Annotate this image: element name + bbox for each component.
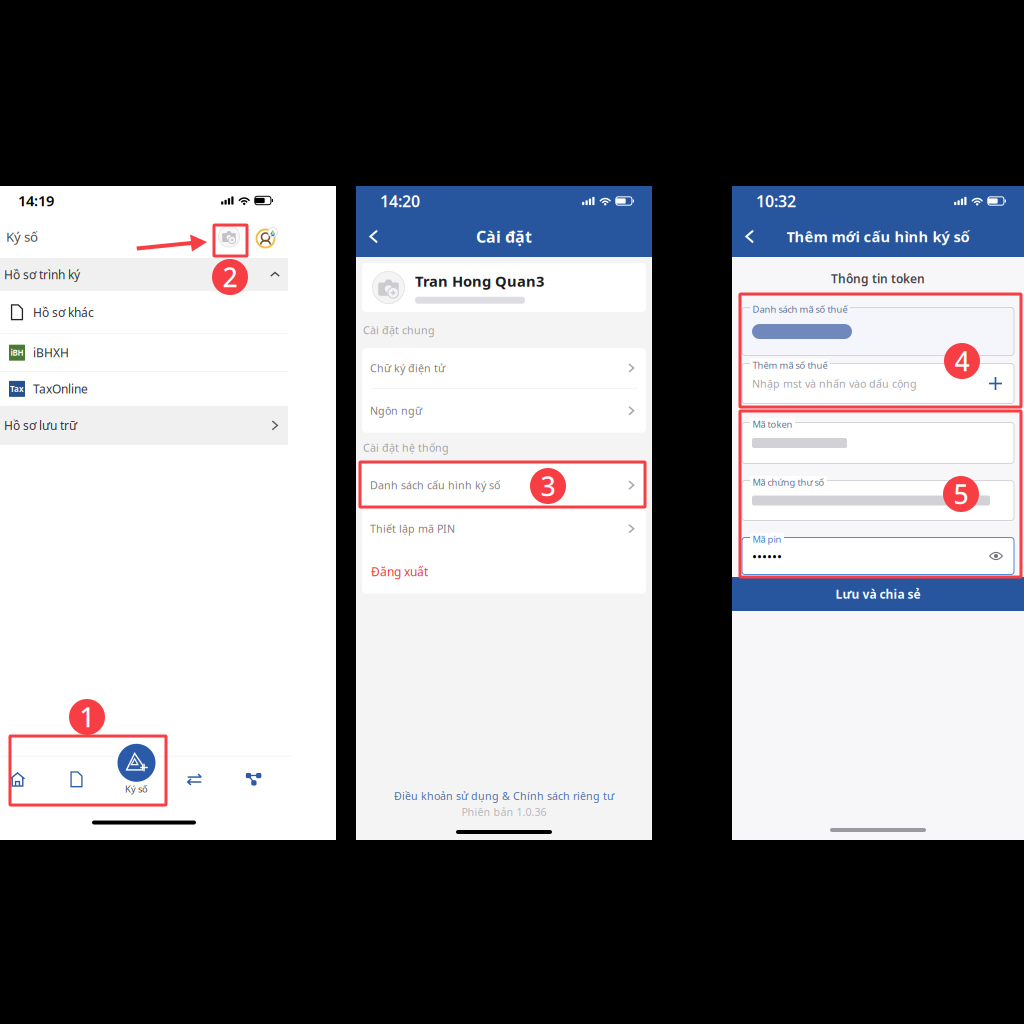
staticText: Hồ sơ lưu trữ	[4, 417, 77, 433]
staticText: Cài đặt chung	[363, 323, 435, 337]
staticText: Cài đặt	[476, 226, 532, 247]
button[interactable]: Hồ sơ lưu trữ	[0, 406, 288, 445]
button[interactable]: Đăng xuất	[362, 550, 646, 594]
staticText: Thêm mới cấu hình ký số	[786, 227, 969, 246]
staticText: Thêm mã số thuế	[752, 359, 827, 371]
staticText: Tran Hong Quan3	[415, 271, 544, 291]
staticText: Cài đặt hệ thống	[363, 441, 449, 455]
staticText: 14:20	[380, 190, 420, 212]
button[interactable]: Tài khoản	[251, 221, 282, 252]
button[interactable]: Chữ ký điện tử	[362, 348, 646, 388]
staticText: Chữ ký điện tử	[370, 361, 445, 375]
staticText: 5	[953, 476, 968, 512]
staticText: Thiết lập mã PIN	[370, 522, 455, 536]
button[interactable]: Chụp ảnh	[213, 220, 251, 252]
button[interactable]: Hồ sơ	[47, 756, 106, 803]
staticText: Nhập mst và nhấn vào dấu cộng	[752, 376, 917, 391]
button[interactable]: Tran Hong Quan3	[362, 263, 646, 312]
staticText: Mã chứng thư số	[752, 476, 824, 488]
staticText: Điều khoản sử dụng & Chính sách riêng tư	[394, 789, 614, 803]
staticText: 14:19	[18, 191, 54, 210]
staticText: Mã token	[752, 418, 792, 430]
staticText: Tax	[10, 384, 24, 394]
staticText: 3	[540, 468, 555, 504]
button[interactable]: Danh sách cấu hình ký số	[362, 463, 646, 508]
staticText: 1	[79, 699, 94, 735]
staticText: 4	[954, 343, 969, 379]
button[interactable]: Thêm mã số thuế	[985, 373, 1006, 394]
button[interactable]: Luồng ký	[224, 756, 283, 803]
staticText: Ký số	[6, 228, 38, 245]
staticText: TaxOnline	[33, 381, 88, 397]
staticText: Ngôn ngữ	[370, 404, 422, 418]
button[interactable]: iBH	[0, 334, 288, 371]
staticText: 10:32	[756, 190, 796, 212]
staticText: Hồ sơ khác	[33, 304, 94, 320]
staticText: Mã pin	[752, 533, 781, 545]
button[interactable]: Quay lại	[356, 221, 389, 251]
staticText: 2	[222, 259, 237, 295]
staticText: Lưu và chia sẻ	[835, 586, 920, 602]
staticText: Ký số	[125, 783, 148, 795]
staticText: Hồ sơ trình ký	[4, 266, 80, 282]
button[interactable]: Ngôn ngữ	[362, 389, 646, 433]
button[interactable]: Hiện mã pin	[986, 547, 1006, 565]
button[interactable]: Trang chủ	[0, 756, 47, 803]
button[interactable]: Quay lại	[732, 221, 765, 251]
staticText: Danh sách cấu hình ký số	[370, 478, 500, 492]
staticText: iBH	[10, 347, 23, 358]
button[interactable]: Hồ sơ trình ký	[0, 258, 288, 291]
button[interactable]: Lưu và chia sẻ	[732, 577, 1024, 611]
staticText: iBHXH	[33, 345, 69, 361]
button[interactable]: Chuyển tiếp	[165, 756, 224, 803]
staticText: Đăng xuất	[371, 564, 428, 580]
button[interactable]: Điều khoản sử dụng & Chính sách riêng tư	[394, 789, 614, 803]
button[interactable]: Thiết lập mã PIN	[362, 508, 646, 550]
staticText: Thông tin token	[831, 270, 925, 286]
button[interactable]: Ký số	[107, 744, 165, 795]
staticText: Danh sách mã số thuế	[752, 303, 847, 315]
button[interactable]: Hồ sơ khác	[0, 291, 288, 333]
button[interactable]: Tax	[0, 372, 288, 406]
staticText: ••••••	[752, 547, 782, 565]
staticText: Phiên bản 1.0.36	[461, 805, 546, 819]
